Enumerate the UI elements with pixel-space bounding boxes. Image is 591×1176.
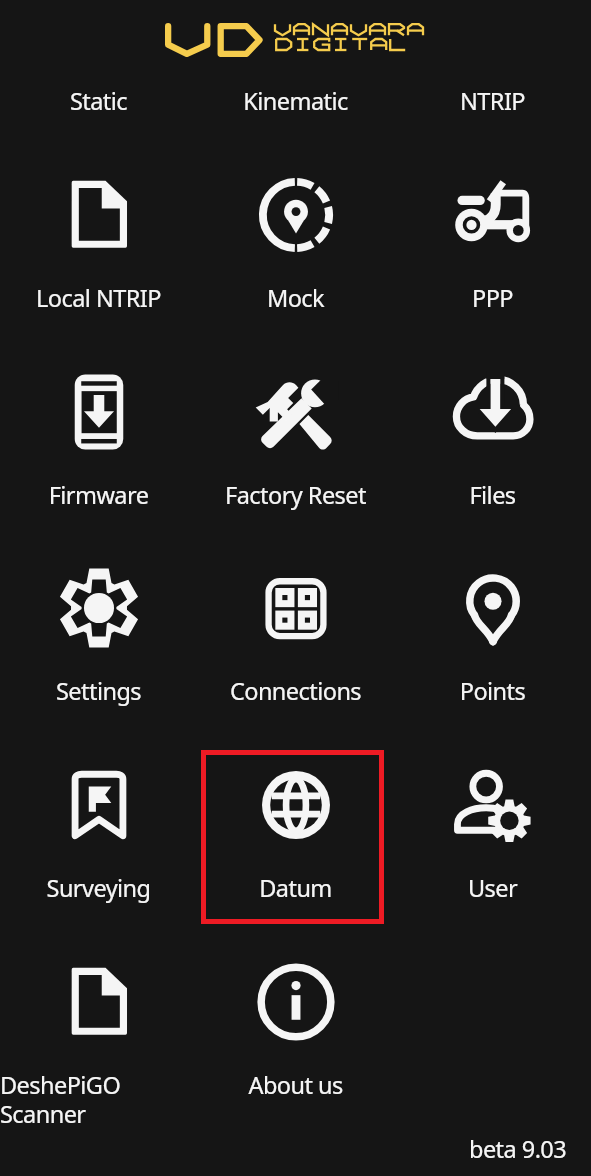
button[interactable]: Factory Reset: [197, 324, 394, 521]
staticText: NTRIP: [394, 85, 591, 117]
staticText: Mock: [197, 282, 394, 314]
button[interactable]: Firmware: [0, 324, 197, 521]
staticText: Factory Reset: [197, 479, 394, 511]
button[interactable]: NTRIP: [394, 0, 591, 127]
staticText: Kinematic: [197, 85, 394, 117]
other: Vanavara Digital: [165, 22, 413, 56]
button[interactable]: PPP: [394, 127, 591, 324]
staticText: Files: [394, 479, 591, 511]
button[interactable]: Local NTRIP: [0, 127, 197, 324]
staticText: PPP: [394, 282, 591, 314]
staticText: Points: [394, 675, 591, 707]
staticText: DeshePiGO Scanner: [0, 1069, 197, 1130]
button[interactable]: Files: [394, 324, 591, 521]
staticText: beta 9.03: [469, 1133, 567, 1165]
button[interactable]: User: [394, 717, 591, 914]
staticText: Local NTRIP: [0, 282, 197, 314]
button[interactable]: About us: [197, 914, 394, 1111]
staticText: Datum: [197, 872, 394, 904]
button[interactable]: Surveying: [0, 717, 197, 914]
button[interactable]: Kinematic: [197, 0, 394, 127]
staticText: About us: [197, 1069, 394, 1101]
staticText: Surveying: [0, 872, 197, 904]
button[interactable]: Mock: [197, 127, 394, 324]
button[interactable]: DeshePiGO Scanner: [0, 914, 197, 1111]
staticText: Firmware: [0, 479, 197, 511]
staticText: Connections: [197, 675, 394, 707]
button[interactable]: Points: [394, 520, 591, 717]
button[interactable]: Static: [0, 0, 197, 127]
staticText: User: [394, 872, 591, 904]
staticText: Static: [0, 85, 197, 117]
button[interactable]: Settings: [0, 520, 197, 717]
button[interactable]: Connections: [197, 520, 394, 717]
staticText: Settings: [0, 675, 197, 707]
button[interactable]: Datum: [197, 717, 394, 914]
